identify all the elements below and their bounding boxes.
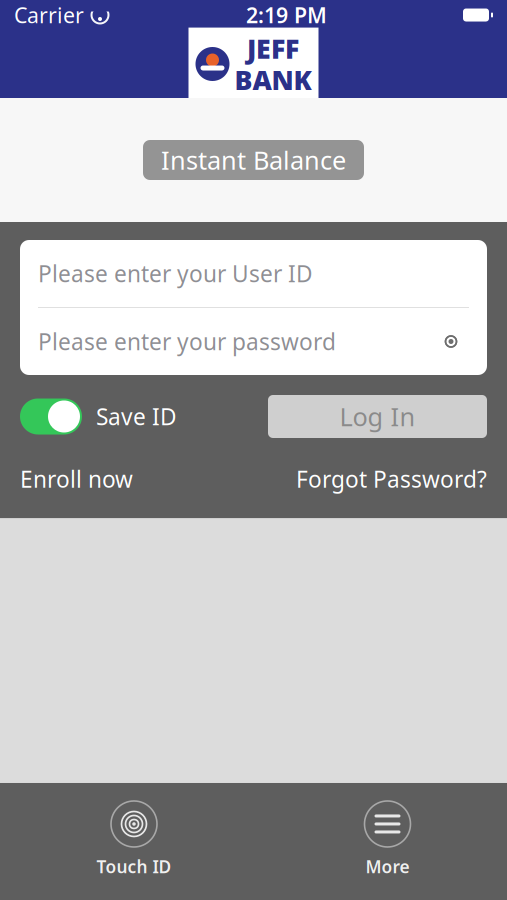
button[interactable]: Show password bbox=[433, 323, 469, 359]
staticText: 2:19 PM bbox=[246, 1, 327, 29]
staticText: Enroll now bbox=[20, 464, 133, 494]
staticText: Instant Balance bbox=[161, 143, 346, 177]
button[interactable]: Log In bbox=[268, 395, 487, 438]
staticText: More bbox=[365, 855, 409, 878]
staticText: JEFF bbox=[247, 31, 299, 66]
button[interactable]: Enroll now bbox=[20, 464, 133, 494]
button[interactable]: Instant Balance bbox=[143, 140, 364, 180]
button[interactable]: More bbox=[364, 801, 410, 878]
staticText: Please enter your User ID bbox=[38, 258, 313, 288]
staticText: Touch ID bbox=[96, 855, 171, 878]
staticText: BANK bbox=[234, 62, 311, 97]
staticText: Save ID bbox=[96, 401, 177, 431]
button[interactable]: Touch ID bbox=[96, 801, 171, 878]
staticText: Please enter your password bbox=[38, 326, 336, 356]
staticText: Carrier bbox=[14, 1, 84, 29]
button[interactable]: Save ID bbox=[20, 398, 177, 434]
button[interactable]: Forgot Password? bbox=[296, 464, 487, 494]
staticText: Log In bbox=[339, 400, 415, 433]
staticText: Forgot Password? bbox=[296, 464, 487, 494]
